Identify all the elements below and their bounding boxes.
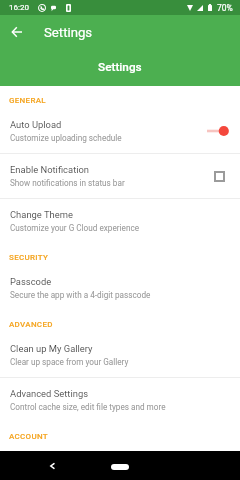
staticText: Customize your G Cloud experience xyxy=(10,223,140,233)
staticText: ACCOUNT xyxy=(9,432,48,441)
staticText: GENERAL xyxy=(9,96,46,105)
staticText: Enable Notification xyxy=(10,164,90,175)
staticText: 16:20 xyxy=(9,3,29,12)
button[interactable]: Advanced Settings xyxy=(0,378,240,422)
button[interactable]: Auto upload toggle xyxy=(207,121,229,141)
button[interactable]: Enable Notification xyxy=(0,154,240,198)
staticText: Show notifications in status bar xyxy=(10,178,125,188)
button[interactable]: Back xyxy=(3,18,31,46)
staticText: Change Theme xyxy=(10,209,73,220)
staticText: Passcode xyxy=(10,276,52,287)
button[interactable]: Back xyxy=(42,456,62,476)
button[interactable]: Settings xyxy=(0,50,240,86)
staticText: Clean up My Gallery xyxy=(10,343,93,354)
button[interactable]: Home xyxy=(111,464,129,470)
staticText: SECURITY xyxy=(9,253,49,262)
staticText: 70% xyxy=(217,3,233,13)
button[interactable]: Change Theme xyxy=(0,199,240,243)
staticText: Clear up space from your Gallery xyxy=(10,357,129,367)
button[interactable]: Clean up My Gallery xyxy=(0,333,240,377)
staticText: Settings xyxy=(44,25,93,40)
staticText: Auto Upload xyxy=(10,119,62,130)
button[interactable]: Enable notification checkbox xyxy=(209,166,229,186)
button[interactable]: Passcode xyxy=(0,266,240,310)
staticText: Advanced Settings xyxy=(10,388,89,399)
staticText: ADVANCED xyxy=(9,320,53,329)
button[interactable]: Auto Upload xyxy=(0,109,240,153)
staticText: Secure the app with a 4-digit passcode xyxy=(10,290,151,300)
staticText: Control cache size, edit file types and … xyxy=(10,402,166,412)
staticText: Settings xyxy=(98,60,142,74)
staticText: Customize uploading schedule xyxy=(10,133,122,143)
